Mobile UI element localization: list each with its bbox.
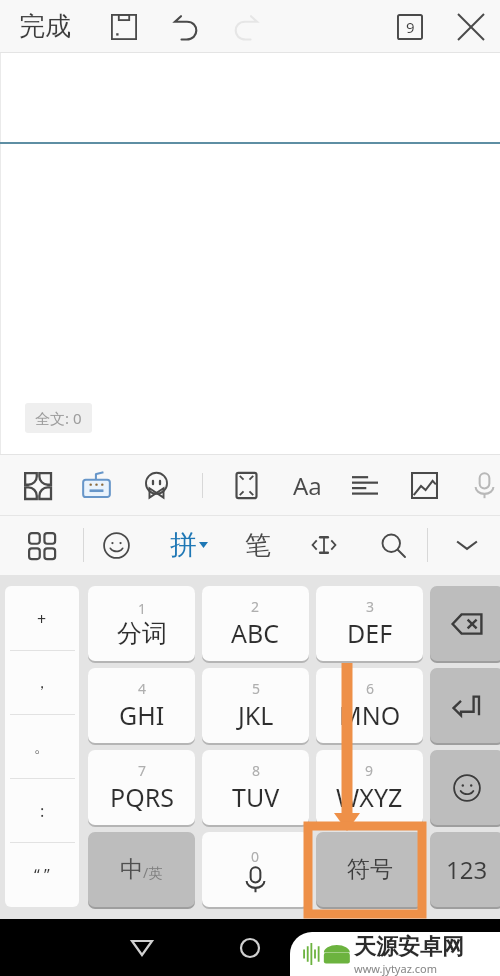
staticText: 符号 <box>347 855 393 884</box>
button[interactable]: Scan <box>228 469 264 501</box>
button[interactable]: 笔 <box>240 526 276 564</box>
staticText: 4 <box>138 679 147 698</box>
button[interactable]: ， <box>5 651 79 715</box>
staticText: 5 <box>252 679 261 698</box>
staticText: 全文: 0 <box>35 408 82 428</box>
staticText: 8 <box>252 761 261 780</box>
button[interactable]: 8 <box>202 750 309 825</box>
button[interactable]: Redo <box>225 7 265 47</box>
staticText: ， <box>34 673 50 693</box>
button[interactable]: 3 <box>316 586 423 661</box>
staticText: 7 <box>138 761 147 780</box>
button[interactable]: Back <box>120 926 164 970</box>
button[interactable] <box>430 668 500 743</box>
staticText: “ ” <box>34 864 50 886</box>
staticText: MNO <box>339 698 401 732</box>
button[interactable]: 2 <box>202 586 309 661</box>
staticText: 9 <box>406 17 415 37</box>
button[interactable]: Search <box>375 529 411 561</box>
button[interactable]: 中 <box>88 832 195 907</box>
button[interactable]: 5 <box>202 668 309 743</box>
staticText: Aa <box>293 469 322 501</box>
staticText: 2 <box>251 597 260 616</box>
staticText: 9 <box>365 761 374 780</box>
button[interactable]: 符号 <box>316 832 423 907</box>
button[interactable]: Font size <box>289 469 325 501</box>
staticText: 3 <box>366 597 375 616</box>
staticText: 拼 <box>170 528 197 562</box>
staticText: DEF <box>347 616 393 650</box>
button[interactable]: + <box>5 586 79 651</box>
staticText: GHI <box>119 698 165 732</box>
staticText: 天源安卓网 <box>354 933 464 961</box>
button[interactable] <box>430 586 500 661</box>
button[interactable]: Voice input <box>466 469 500 501</box>
button[interactable]: 完成 <box>14 0 76 53</box>
staticText: + <box>37 608 47 630</box>
button[interactable]: Move cursor <box>306 529 342 561</box>
button[interactable]: 1 <box>88 586 195 661</box>
button[interactable]: “ ” <box>5 843 79 907</box>
staticText: /英 <box>143 863 163 882</box>
button[interactable]: 拼 <box>168 526 210 564</box>
button[interactable]: Home <box>228 926 272 970</box>
staticText: : <box>40 800 45 822</box>
staticText: ABC <box>231 616 280 650</box>
staticText: 分词 <box>117 618 167 649</box>
button[interactable]: Image <box>406 469 442 501</box>
button[interactable] <box>430 750 500 825</box>
button[interactable]: Page count <box>390 7 430 47</box>
button[interactable]: Sticker <box>138 469 174 501</box>
staticText: WXYZ <box>336 780 403 814</box>
button[interactable]: 4 <box>88 668 195 743</box>
button[interactable]: 0 <box>202 832 309 907</box>
button[interactable]: : <box>5 779 79 843</box>
button[interactable]: Save <box>104 7 144 47</box>
staticText: 完成 <box>19 10 71 43</box>
button[interactable]: Align <box>347 469 383 501</box>
staticText: 中 <box>120 855 143 884</box>
button[interactable]: Keyboard <box>77 468 115 502</box>
staticText: 1 <box>138 599 147 618</box>
button[interactable]: Close <box>451 7 491 47</box>
button[interactable]: 9 <box>316 750 423 825</box>
staticText: 0 <box>251 847 260 866</box>
button[interactable]: Emoji <box>98 529 134 561</box>
staticText: JKL <box>238 698 274 732</box>
button[interactable]: 7 <box>88 750 195 825</box>
button[interactable]: 6 <box>316 668 423 743</box>
button[interactable]: Apps <box>19 469 55 501</box>
staticText: TUV <box>232 780 280 814</box>
staticText: www.jytyaz.com <box>354 961 437 976</box>
staticText: 6 <box>366 679 375 698</box>
button[interactable]: Undo <box>166 7 206 47</box>
button[interactable]: 全文: 0 <box>25 403 92 433</box>
staticText: PQRS <box>110 780 174 814</box>
button[interactable]: 。 <box>5 715 79 779</box>
button[interactable]: Apps <box>23 529 59 561</box>
button[interactable]: 123 <box>430 832 500 907</box>
staticText: 。 <box>34 737 50 757</box>
staticText: 123 <box>446 853 488 886</box>
staticText: 笔 <box>245 529 271 562</box>
button[interactable]: Collapse keyboard <box>449 529 485 561</box>
